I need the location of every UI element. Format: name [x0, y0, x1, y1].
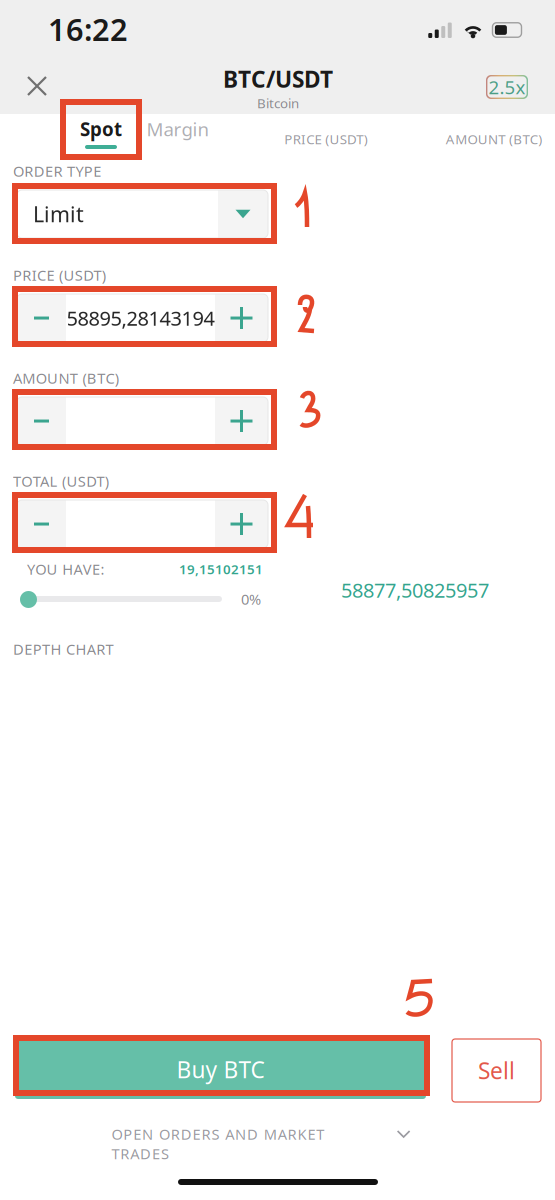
staticText: OPEN ORDERS AND MARKET TRADES [111, 1124, 388, 1144]
staticText: PRICE (USDT) [284, 130, 368, 148]
staticText: Sell [478, 1055, 515, 1085]
button[interactable]: Margin [136, 112, 220, 146]
button[interactable]: Sell [452, 1039, 541, 1102]
staticText: Buy BTC [176, 1054, 264, 1084]
staticText: ORDER TYPE [13, 161, 101, 181]
staticText: Bitcoin [257, 94, 299, 112]
button[interactable]: Spot [60, 100, 142, 160]
staticText: Margin [146, 117, 209, 141]
staticText: 58895,28143194 [66, 305, 214, 331]
staticText: 58877,50825957 [341, 577, 489, 603]
staticText: BTC/USDT [223, 64, 333, 94]
button[interactable]: Close [15, 64, 59, 108]
button[interactable]: Increase [215, 294, 268, 342]
staticText: 2.5x [488, 75, 525, 99]
staticText: TOTAL (USDT) [13, 471, 109, 491]
button[interactable]: Decrease [17, 397, 66, 445]
button[interactable]: Increase [215, 397, 268, 445]
staticText: 19,15102151 [179, 560, 263, 578]
staticText: 16:22 [48, 9, 128, 49]
staticText: PRICE (USDT) [13, 265, 106, 285]
button[interactable]: Limit [17, 190, 268, 238]
button[interactable]: Decrease [17, 294, 66, 342]
staticText: AMOUNT (BTC) [446, 130, 542, 148]
button[interactable]: 2.5x [486, 75, 528, 99]
button[interactable]: Buy BTC [15, 1040, 426, 1099]
button[interactable]: Decrease [17, 500, 66, 548]
button[interactable]: OPEN ORDERS AND MARKET TRADES [61, 1119, 461, 1149]
staticText: AMOUNT (BTC) [13, 368, 119, 388]
staticText: DEPTH CHART [13, 639, 113, 659]
staticText: Limit [33, 200, 84, 228]
button[interactable]: Increase [215, 500, 268, 548]
staticText: YOU HAVE: [27, 559, 104, 579]
staticText: 0% [241, 589, 261, 609]
staticText: Spot [80, 117, 122, 141]
